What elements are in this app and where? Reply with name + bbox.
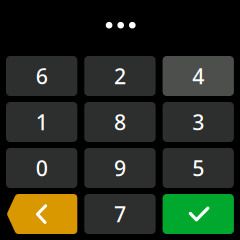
button[interactable]: 2 <box>84 56 156 96</box>
staticText: 6 <box>36 62 48 90</box>
staticText: 4 <box>192 62 204 90</box>
button[interactable]: 1 <box>6 102 77 142</box>
staticText: 0 <box>36 154 48 182</box>
button[interactable]: 3 <box>163 102 234 142</box>
staticText: 9 <box>114 154 126 182</box>
button[interactable]: 0 <box>6 148 77 188</box>
staticText: 5 <box>192 154 204 182</box>
button[interactable]: 4 <box>163 56 234 96</box>
staticText: 7 <box>114 200 126 228</box>
button[interactable]: 9 <box>84 148 156 188</box>
button[interactable]: 6 <box>6 56 77 96</box>
staticText: 2 <box>114 62 126 90</box>
button[interactable]: Delete <box>6 194 77 234</box>
button[interactable]: 8 <box>84 102 156 142</box>
staticText: 8 <box>114 108 126 136</box>
staticText: 1 <box>36 108 48 136</box>
button[interactable]: Confirm <box>163 194 234 234</box>
button[interactable]: 5 <box>163 148 234 188</box>
button[interactable]: 7 <box>84 194 156 234</box>
staticText: 3 <box>192 108 204 136</box>
